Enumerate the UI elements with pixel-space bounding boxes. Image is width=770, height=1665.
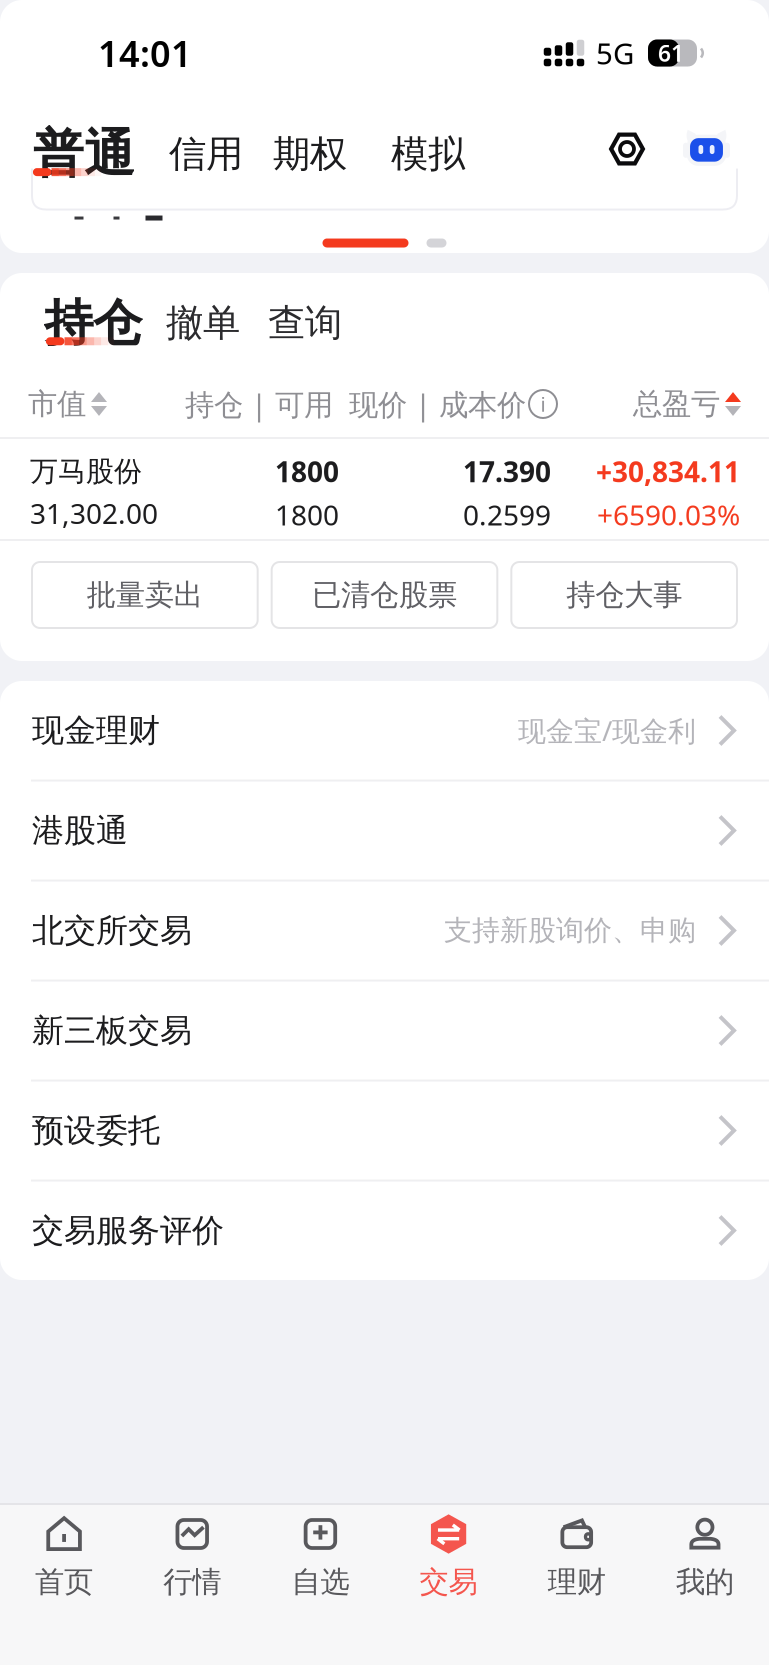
button[interactable]: 新三板交易 xyxy=(0,979,769,1079)
button[interactable]: 总盈亏 xyxy=(633,386,741,422)
button[interactable]: 万马股份 xyxy=(0,439,769,539)
button[interactable]: 自选 xyxy=(256,1505,384,1593)
button[interactable]: 批量卖出 xyxy=(32,562,258,628)
staticText: 信用 xyxy=(169,131,243,177)
button[interactable]: 北交所交易 xyxy=(0,879,769,979)
staticText: 模拟 xyxy=(391,131,465,177)
staticText: 新三板交易 xyxy=(32,1011,192,1050)
staticText: 5G xyxy=(596,33,634,72)
staticText: 预设委托 xyxy=(32,1111,160,1150)
staticText: 持仓 | 可用 xyxy=(185,384,333,423)
button[interactable]: 信用 xyxy=(169,131,243,177)
staticText: 14:01 xyxy=(98,29,192,77)
staticText: 理财 xyxy=(548,1564,606,1600)
button[interactable]: 查询 xyxy=(268,300,342,346)
button[interactable]: 普通 xyxy=(33,123,135,185)
staticText: 1800 xyxy=(275,496,339,533)
staticText: 31,302.00 xyxy=(30,495,158,532)
staticText: 交易服务评价 xyxy=(32,1211,224,1250)
staticText: 港股通 xyxy=(32,811,128,850)
staticText: 已清仓股票 xyxy=(312,577,457,613)
button[interactable]: 交易服务评价 xyxy=(0,1179,769,1279)
staticText: 期权 xyxy=(273,131,347,177)
button[interactable]: 已清仓股票 xyxy=(272,562,497,628)
staticText: 0.2599 xyxy=(463,496,551,533)
button[interactable]: 理财 xyxy=(513,1505,641,1593)
staticText: 我的 xyxy=(676,1564,734,1600)
button[interactable]: 交易 xyxy=(384,1505,513,1593)
staticText: 北交所交易 xyxy=(32,911,192,950)
staticText: 行情 xyxy=(163,1564,221,1600)
staticText: 持仓大事 xyxy=(566,577,682,613)
staticText: 总盈亏 xyxy=(633,386,720,422)
staticText: 现金宝/现金利 xyxy=(518,712,696,749)
button[interactable]: 预设委托 xyxy=(0,1079,769,1179)
staticText: 61 xyxy=(658,38,684,68)
staticText: 首页 xyxy=(35,1564,93,1600)
staticText: +6590.03% xyxy=(597,496,740,533)
button[interactable]: 持仓 xyxy=(44,293,142,353)
button[interactable]: 持仓大事 xyxy=(511,562,737,628)
button[interactable]: 港股通 xyxy=(0,779,769,879)
button[interactable]: 设置 xyxy=(609,137,645,170)
button[interactable]: 首页 xyxy=(0,1505,128,1593)
staticText: 1800 xyxy=(275,453,339,490)
button[interactable]: 现金理财 xyxy=(0,681,769,779)
staticText: 查询 xyxy=(268,300,342,346)
button[interactable]: 撤单 xyxy=(166,300,240,346)
button[interactable]: 市值 xyxy=(28,386,107,422)
staticText: i xyxy=(540,391,545,417)
staticText: 17.390 xyxy=(463,453,551,490)
button[interactable]: 我的 xyxy=(641,1505,769,1593)
staticText: 市值 xyxy=(28,386,86,422)
staticText: 批量卖出 xyxy=(87,577,203,613)
button[interactable]: 行情 xyxy=(128,1505,256,1593)
staticText: 自选 xyxy=(291,1564,349,1600)
staticText: 持仓 xyxy=(44,293,142,353)
staticText: 普通 xyxy=(33,123,135,185)
button[interactable]: 模拟 xyxy=(391,131,465,177)
staticText: 万马股份 xyxy=(30,454,142,489)
button[interactable]: 期权 xyxy=(273,131,347,177)
staticText: 撤单 xyxy=(166,300,240,346)
staticText: 交易 xyxy=(420,1564,478,1600)
staticText: 现价 | 成本价 xyxy=(349,384,526,423)
staticText: 现金理财 xyxy=(32,711,160,750)
button[interactable]: 智能助手 xyxy=(683,135,730,173)
staticText: 支持新股询价、申购 xyxy=(444,913,696,948)
staticText: +30,834.11 xyxy=(596,453,740,490)
